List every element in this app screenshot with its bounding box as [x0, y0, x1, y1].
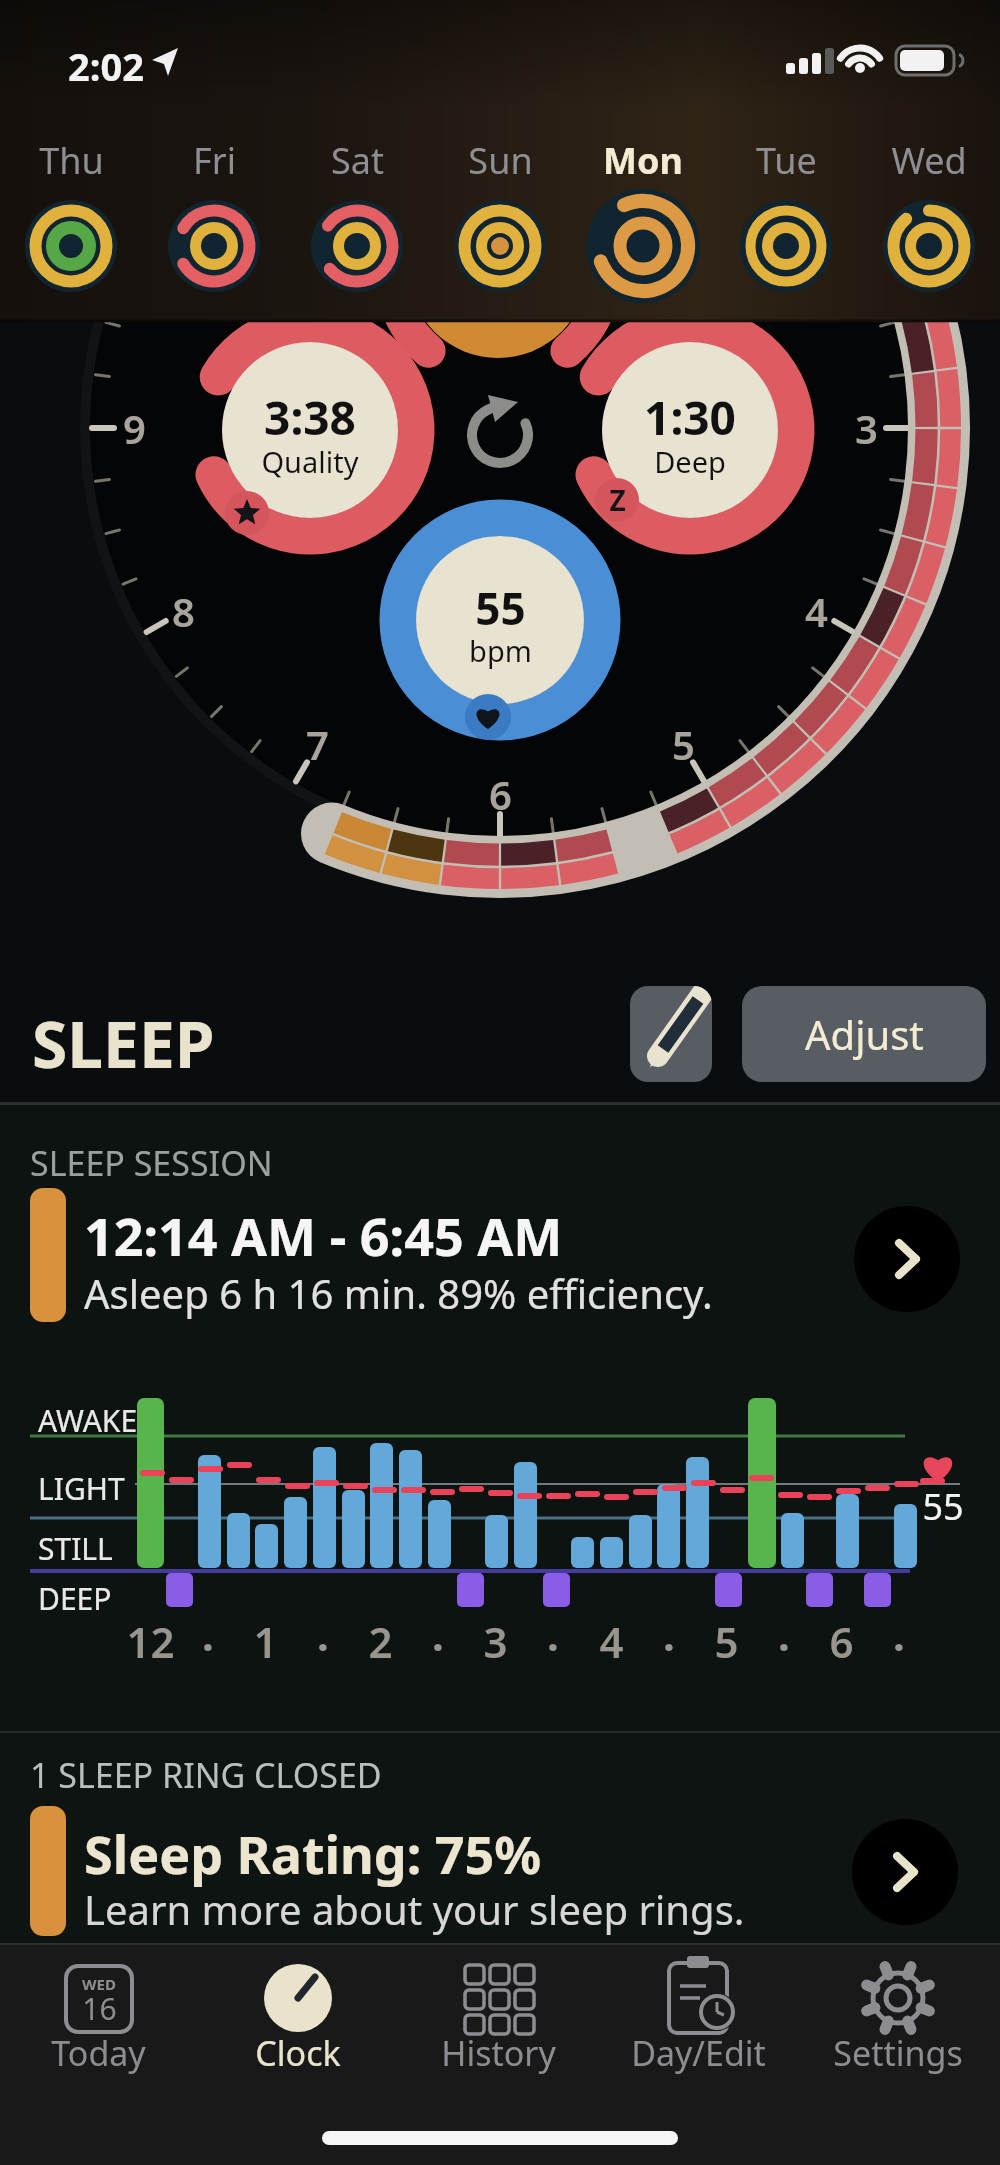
- staticText: ·: [202, 1617, 214, 1674]
- staticText: Deep: [654, 442, 726, 481]
- staticText: Quality: [261, 442, 359, 481]
- staticText: Learn more about your sleep rings.: [84, 1882, 745, 1936]
- staticText: 1:30: [644, 386, 736, 449]
- staticText: 4: [805, 584, 828, 638]
- button[interactable]: [143, 130, 285, 310]
- staticText: 12:14 AM - 6:45 AM: [84, 1200, 563, 1271]
- staticText: 1 SLEEP RING CLOSED: [30, 1752, 382, 1798]
- staticText: bpm: [469, 631, 532, 670]
- staticText: History: [441, 2030, 556, 2076]
- staticText: 7: [306, 717, 329, 771]
- button[interactable]: [0, 1180, 1000, 1330]
- staticText: Tue: [756, 136, 817, 185]
- button[interactable]: Adjust: [742, 986, 986, 1082]
- staticText: Sat: [331, 136, 384, 185]
- staticText: LIGHT: [38, 1468, 125, 1509]
- staticText: ·: [432, 1617, 444, 1674]
- staticText: 16: [82, 1988, 117, 2029]
- staticText: AWAKE: [38, 1400, 138, 1441]
- staticText: Asleep 6 h 16 min. 89% efficiency.: [84, 1266, 713, 1320]
- staticText: STILL: [38, 1528, 113, 1569]
- button[interactable]: [0, 130, 142, 310]
- staticText: 4: [599, 1613, 624, 1670]
- button[interactable]: [808, 1950, 988, 2080]
- staticText: DEEP: [38, 1578, 112, 1619]
- staticText: Thu: [39, 136, 104, 185]
- staticText: ·: [893, 1617, 905, 1674]
- staticText: 5: [672, 717, 695, 771]
- staticText: ·: [778, 1617, 790, 1674]
- staticText: Settings: [833, 2030, 963, 2076]
- staticText: ·: [547, 1617, 559, 1674]
- staticText: Mon: [603, 136, 683, 185]
- staticText: Fri: [193, 136, 236, 185]
- staticText: 8: [172, 584, 195, 638]
- staticText: 6: [489, 767, 512, 821]
- button[interactable]: [0, 1796, 1000, 1944]
- staticText: SLEEP: [32, 1000, 215, 1087]
- staticText: Today: [51, 2030, 146, 2076]
- button[interactable]: [408, 1950, 588, 2080]
- button[interactable]: [429, 130, 571, 310]
- staticText: Clock: [255, 2030, 341, 2076]
- staticText: 9: [123, 401, 146, 455]
- staticText: 5: [714, 1613, 739, 1670]
- button[interactable]: [572, 130, 714, 310]
- staticText: 12: [126, 1613, 175, 1670]
- staticText: 55: [475, 578, 526, 638]
- button[interactable]: [286, 130, 428, 310]
- staticText: Z: [609, 481, 626, 519]
- staticText: SLEEP SESSION: [30, 1140, 273, 1186]
- staticText: ·: [663, 1617, 675, 1674]
- button[interactable]: [715, 130, 857, 310]
- staticText: WED: [82, 1974, 116, 1994]
- button[interactable]: [858, 130, 1000, 310]
- button[interactable]: [608, 1950, 788, 2080]
- staticText: 3: [855, 401, 878, 455]
- staticText: 6: [829, 1613, 854, 1670]
- staticText: Day/Edit: [631, 2030, 766, 2076]
- staticText: 2:02: [68, 40, 144, 92]
- button[interactable]: [8, 1950, 188, 2080]
- staticText: 55: [922, 1482, 964, 1531]
- staticText: ·: [317, 1617, 329, 1674]
- button[interactable]: [630, 986, 712, 1082]
- staticText: Adjust: [805, 1007, 924, 1061]
- staticText: 3:38: [264, 386, 356, 449]
- staticText: Wed: [891, 136, 967, 185]
- staticText: Sun: [468, 136, 533, 185]
- staticText: 2: [368, 1613, 393, 1670]
- button[interactable]: [208, 1950, 388, 2080]
- staticText: 1: [253, 1613, 278, 1670]
- staticText: Sleep Rating: 75%: [84, 1818, 542, 1889]
- staticText: 3: [483, 1613, 508, 1670]
